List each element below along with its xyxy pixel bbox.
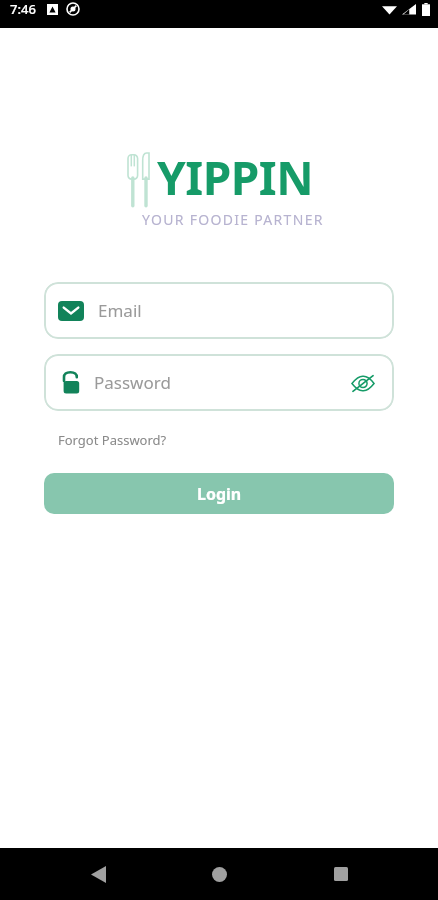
staticText: 7:46	[10, 0, 36, 18]
button[interactable]: Login	[44, 473, 394, 514]
button[interactable]: Forgot Password?	[44, 427, 181, 453]
button[interactable]: Password	[44, 354, 394, 411]
staticText: Email	[98, 299, 142, 322]
staticText: Login	[197, 483, 242, 505]
button[interactable]: Back	[74, 850, 122, 898]
button[interactable]: Email	[44, 282, 394, 339]
button[interactable]: Show password	[346, 366, 380, 400]
staticText: Password	[94, 371, 171, 394]
staticText: YIPPIN	[157, 146, 314, 209]
button[interactable]: Home	[195, 850, 243, 898]
staticText: YOUR FOODIE PARTNER	[142, 210, 324, 229]
button[interactable]: Recent apps	[317, 850, 365, 898]
staticText: Forgot Password?	[58, 431, 167, 449]
